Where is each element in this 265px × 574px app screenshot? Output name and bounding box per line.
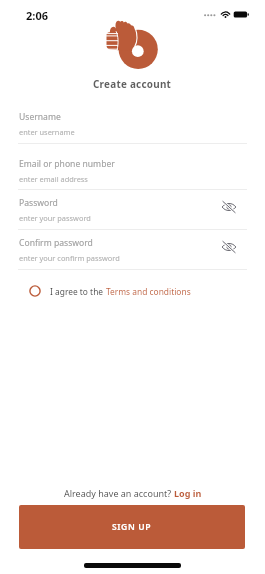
button[interactable]: Show password (220, 198, 238, 216)
staticText: Already have an account? (64, 487, 174, 499)
staticText: I agree to the (50, 286, 106, 297)
button[interactable]: Email or phone number (0, 155, 265, 190)
staticText: Email or phone number (19, 158, 115, 170)
staticText: 2:06 (26, 8, 48, 23)
button[interactable]: Username (0, 108, 265, 144)
staticText: Terms and conditions (106, 286, 191, 297)
staticText: Confirm password (19, 237, 93, 249)
button[interactable]: SIGN UP (19, 505, 245, 549)
staticText: enter username (19, 127, 75, 137)
button[interactable]: Log in (174, 487, 202, 499)
staticText: enter email address (19, 174, 88, 184)
button[interactable]: Show password (220, 238, 238, 256)
staticText: Log in (174, 487, 202, 499)
staticText: SIGN UP (112, 521, 152, 533)
button[interactable]: Confirm password (0, 234, 265, 270)
staticText: enter your confirm password (19, 253, 120, 263)
button[interactable]: Password (0, 194, 265, 230)
staticText: Password (19, 197, 58, 209)
staticText: enter your password (19, 213, 91, 223)
button[interactable]: I agree to the (29, 285, 247, 297)
staticText: Create account (93, 77, 172, 90)
staticText: Username (19, 111, 61, 123)
